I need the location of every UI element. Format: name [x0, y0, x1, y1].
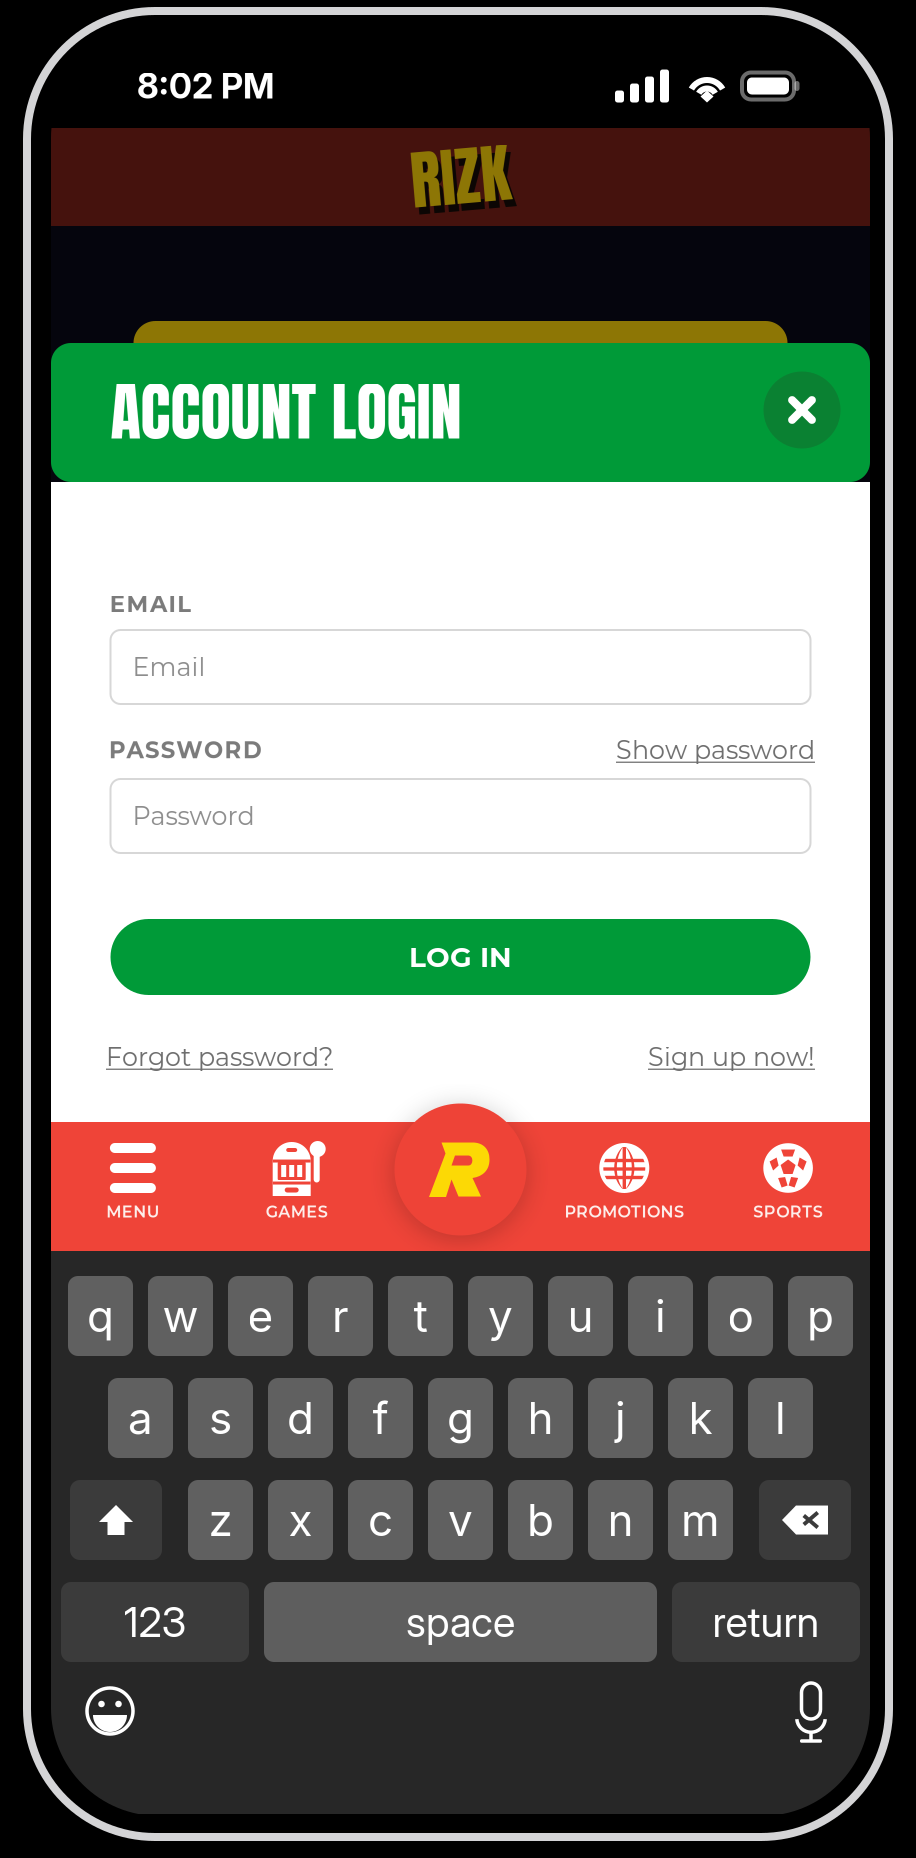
staticText: Show password [616, 735, 815, 765]
staticText: SPORTS [753, 1202, 823, 1221]
button[interactable]: w [148, 1276, 213, 1356]
staticText: EMAIL [110, 590, 191, 618]
staticText: t [413, 1289, 427, 1343]
staticText: f [372, 1391, 388, 1445]
staticText: 123 [123, 1597, 186, 1647]
button[interactable]: t [388, 1276, 453, 1356]
button[interactable]: Dictate [780, 1676, 842, 1746]
button[interactable]: c [348, 1480, 413, 1560]
button[interactable]: a [108, 1378, 173, 1458]
button[interactable]: n [588, 1480, 653, 1560]
staticText: Sign up now! [648, 1042, 815, 1072]
button[interactable]: MENU [51, 1122, 215, 1253]
button[interactable]: Password [110, 779, 810, 853]
button[interactable]: i [628, 1276, 693, 1356]
staticText: z [208, 1493, 232, 1547]
staticText: w [162, 1289, 198, 1343]
button[interactable]: y [468, 1276, 533, 1356]
staticText: v [448, 1493, 473, 1547]
button[interactable]: Forgot password? [106, 1042, 333, 1072]
staticText: l [775, 1391, 786, 1445]
staticText: k [688, 1391, 712, 1445]
staticText: MENU [106, 1202, 160, 1221]
staticText: u [567, 1289, 593, 1343]
staticText: g [447, 1391, 474, 1445]
staticText: s [209, 1391, 232, 1445]
button[interactable]: Shift [70, 1480, 162, 1560]
button[interactable]: u [548, 1276, 613, 1356]
button[interactable]: Delete [759, 1480, 851, 1560]
button[interactable]: m [668, 1480, 733, 1560]
staticText: e [247, 1289, 273, 1343]
button[interactable]: x [268, 1480, 333, 1560]
button[interactable]: z [188, 1480, 253, 1560]
staticText: m [681, 1493, 720, 1547]
button[interactable]: v [428, 1480, 493, 1560]
button[interactable]: l [748, 1378, 813, 1458]
button[interactable]: o [708, 1276, 773, 1356]
button[interactable]: Close [763, 371, 840, 448]
button[interactable]: f [348, 1378, 413, 1458]
button[interactable]: d [268, 1378, 333, 1458]
button[interactable]: Email [110, 630, 810, 704]
staticText: a [128, 1391, 153, 1445]
staticText: GAMES [266, 1202, 328, 1221]
staticText: ACCOUNT LOGIN [110, 365, 461, 459]
staticText: i [655, 1289, 666, 1343]
button[interactable]: SPORTS [706, 1122, 870, 1253]
staticText: Email [132, 652, 205, 682]
staticText: n [607, 1493, 633, 1547]
staticText: c [368, 1493, 393, 1547]
button[interactable]: Show password [616, 735, 815, 765]
staticText: o [727, 1289, 753, 1343]
button[interactable]: j [588, 1378, 653, 1458]
staticText: b [527, 1493, 554, 1547]
button[interactable]: Emoji keyboard [79, 1680, 141, 1742]
staticText: space [406, 1597, 515, 1647]
button[interactable]: Rizk home [394, 1103, 526, 1235]
staticText: Password [132, 801, 254, 831]
button[interactable]: s [188, 1378, 253, 1458]
staticText: x [288, 1493, 312, 1547]
button[interactable]: k [668, 1378, 733, 1458]
staticText: r [332, 1289, 349, 1343]
button[interactable]: h [508, 1378, 573, 1458]
staticText: RIZK [410, 130, 510, 224]
button[interactable]: r [308, 1276, 373, 1356]
staticText: y [488, 1289, 513, 1343]
staticText: p [807, 1289, 834, 1343]
button[interactable]: q [68, 1276, 133, 1356]
staticText: Forgot password? [106, 1042, 333, 1072]
staticText: q [87, 1289, 114, 1343]
staticText: LOG IN [409, 940, 512, 974]
staticText: 8:02 PM [137, 65, 274, 107]
staticText: j [615, 1391, 626, 1445]
button[interactable]: 123 [61, 1582, 249, 1662]
button[interactable]: space [264, 1582, 657, 1662]
staticText: RIZK [414, 137, 514, 231]
button[interactable]: g [428, 1378, 493, 1458]
staticText: h [527, 1391, 553, 1445]
button[interactable]: b [508, 1480, 573, 1560]
staticText: PASSWORD [109, 736, 262, 764]
button[interactable]: e [228, 1276, 293, 1356]
button[interactable]: p [788, 1276, 853, 1356]
staticText: PROMOTIONS [565, 1202, 684, 1221]
button[interactable]: return [672, 1582, 860, 1662]
button[interactable]: LOG IN [110, 919, 810, 995]
button[interactable]: GAMES [215, 1122, 379, 1253]
staticText: d [287, 1391, 314, 1445]
button[interactable]: PROMOTIONS [542, 1122, 706, 1253]
staticText: return [712, 1597, 819, 1647]
button[interactable]: Sign up now! [648, 1042, 815, 1072]
